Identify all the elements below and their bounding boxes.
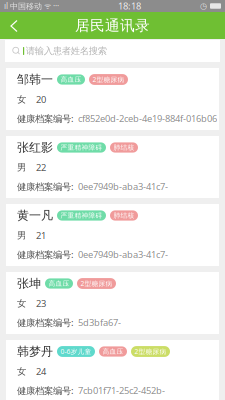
button[interactable]: 邹韩一 bbox=[6, 68, 219, 130]
staticText: cf852e0d-2ceb-4e19-884f-016b06 bbox=[78, 112, 217, 125]
staticText: 18:18 bbox=[118, 0, 141, 12]
staticText: 严重精神障碍 bbox=[60, 143, 102, 152]
button[interactable]: 张坤 bbox=[6, 272, 219, 334]
staticText: 邹韩一 bbox=[17, 72, 53, 87]
staticText: 肺结核 bbox=[113, 211, 134, 220]
staticText: 高血压 bbox=[102, 347, 123, 356]
button[interactable]: 请输入患者姓名搜索 bbox=[0, 39, 225, 62]
staticText: 健康档案编号: bbox=[17, 180, 74, 193]
staticText: 21 bbox=[36, 229, 46, 242]
staticText: 7cb01f71-25c2-452b- bbox=[78, 384, 165, 397]
button[interactable]: 张红影 bbox=[6, 136, 219, 198]
staticText: ◷ bbox=[200, 1, 207, 11]
button[interactable]: 黄一凡 bbox=[6, 204, 219, 266]
staticText: 黄一凡 bbox=[17, 208, 53, 223]
staticText: 严重精神障碍 bbox=[60, 211, 102, 220]
staticText: 22 bbox=[36, 161, 46, 174]
staticText: 2型糖尿病 bbox=[92, 75, 124, 84]
staticText: 张坤 bbox=[17, 276, 41, 291]
staticText: 高血压 bbox=[48, 279, 69, 288]
staticText: 24 bbox=[36, 365, 46, 378]
button[interactable]: 返回 bbox=[0, 12, 28, 39]
staticText: 5d3bfa67- bbox=[78, 316, 121, 329]
staticText: 健康档案编号: bbox=[17, 316, 74, 329]
button[interactable]: 韩梦丹 bbox=[6, 340, 219, 400]
staticText: 健康档案编号: bbox=[17, 384, 74, 397]
staticText: 男 bbox=[17, 162, 26, 173]
staticText: 女 bbox=[17, 298, 26, 309]
staticText: 女 bbox=[17, 94, 26, 105]
staticText: 健康档案编号: bbox=[17, 112, 74, 125]
staticText: 高血压 bbox=[60, 75, 81, 84]
staticText: 0ee7949b-aba3-41c7- bbox=[78, 180, 168, 193]
staticText: 0-6岁儿童 bbox=[60, 347, 91, 356]
staticText: 请输入患者姓名搜索 bbox=[26, 45, 107, 57]
staticText: 女 bbox=[17, 366, 26, 377]
staticText: 张红影 bbox=[17, 140, 53, 155]
staticText: 韩梦丹 bbox=[17, 344, 53, 359]
staticText: 20 bbox=[36, 93, 46, 106]
staticText: 男 bbox=[17, 230, 26, 241]
staticText: 健康档案编号: bbox=[17, 248, 74, 261]
staticText: 2型糖尿病 bbox=[134, 347, 166, 356]
staticText: 2型糖尿病 bbox=[80, 279, 112, 288]
staticText: 0ee7949b-aba3-41c7- bbox=[78, 248, 168, 261]
staticText: 23 bbox=[36, 297, 46, 310]
staticText: 肺结核 bbox=[113, 143, 134, 152]
staticText: 居民通讯录 bbox=[75, 16, 150, 34]
staticText: ıl 中国移动 ᯤ ··· bbox=[4, 1, 59, 11]
